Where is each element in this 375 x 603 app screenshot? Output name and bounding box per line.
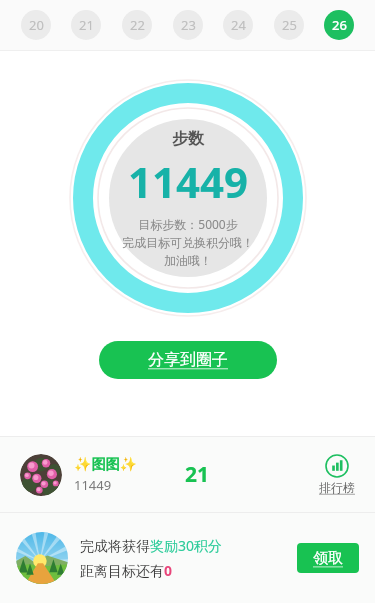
button[interactable]: 领取 [297,543,359,573]
button[interactable]: 25 [274,10,304,40]
staticText: 23 [181,16,196,34]
button[interactable]: 21 [71,10,101,40]
staticText: 排行榜 [319,480,355,495]
staticText: ✨图图✨ [74,456,137,474]
button[interactable]: 26 [324,10,354,40]
staticText: 11449 [128,153,249,210]
staticText: 11449 [74,476,112,494]
staticText: 分享到圈子 [148,350,228,370]
staticText: 24 [231,16,246,34]
staticText: 完成目标可兑换积分哦！ [122,235,254,250]
button[interactable]: 20 [21,10,51,40]
staticText: 26 [332,16,347,34]
button[interactable]: 分享到圈子 [99,341,277,379]
button[interactable]: 24 [223,10,253,40]
staticText: 20 [29,16,44,34]
button[interactable]: ✨图图✨ [0,437,375,512]
button[interactable]: 22 [122,10,152,40]
staticText: 完成将获得奖励30积分 [80,536,223,555]
staticText: 目标步数：5000步 [138,216,238,232]
staticText: 21 [185,460,210,489]
staticText: 距离目标还有0 [80,561,173,580]
staticText: 21 [79,16,94,34]
staticText: 加油哦！ [164,253,212,268]
button[interactable]: 排行榜 [319,454,355,495]
staticText: 22 [130,16,145,34]
staticText: 步数 [172,129,204,149]
button[interactable]: 23 [173,10,203,40]
staticText: 领取 [313,549,343,568]
staticText: 25 [282,16,297,34]
